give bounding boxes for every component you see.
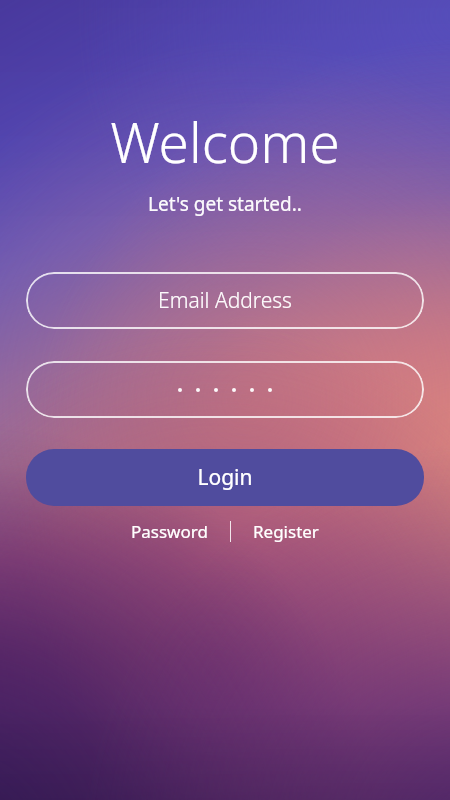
button[interactable]: Register: [245, 516, 327, 547]
staticText: Welcome: [110, 104, 340, 179]
staticText: Email Address: [158, 286, 292, 315]
staticText: Login: [197, 463, 253, 492]
staticText: Register: [253, 520, 319, 543]
button[interactable]: Login: [26, 449, 424, 506]
button[interactable]: Email Address: [26, 272, 424, 329]
staticText: Password: [131, 520, 208, 543]
staticText: Let's get started..: [148, 191, 302, 217]
button[interactable]: Password: [123, 516, 216, 547]
button[interactable]: [26, 361, 424, 418]
